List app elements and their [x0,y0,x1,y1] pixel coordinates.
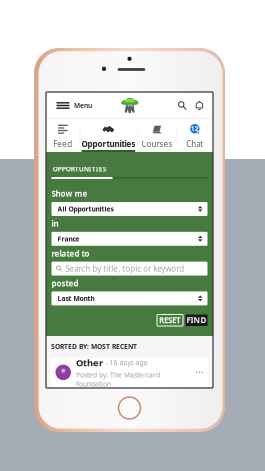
button[interactable]: Last Month [51,291,207,305]
button[interactable]: Opportunities [80,119,137,152]
staticText: in [51,218,58,229]
button[interactable]: Menu [46,93,92,118]
staticText: SORTED BY: MOST RECENT [51,342,137,351]
button[interactable]: 12 [177,119,213,152]
button[interactable]: All Opportunities [51,202,207,216]
button[interactable]: France [51,232,207,246]
staticText: OPPORTUNITIES [53,165,107,173]
staticText: related to [51,248,89,259]
staticText: RESET [159,315,181,325]
staticText: France [57,234,79,243]
staticText: Search by title, topic or keyword [65,263,184,274]
button[interactable]: Courses [137,119,177,152]
staticText: Other [76,356,103,369]
staticText: Menu [74,101,92,110]
staticText: Show me [51,188,87,199]
staticText: - 16 days ago [105,358,147,367]
button[interactable]: Search by title, topic or keyword [51,262,207,276]
button[interactable]: Notifications [192,95,213,115]
staticText: posted [51,278,78,289]
staticText: Opportunities [81,138,135,149]
button[interactable]: Search [173,96,192,115]
button[interactable]: Feed [46,119,80,152]
button[interactable]: RESET [157,314,183,326]
button[interactable]: Other [50,358,209,387]
staticText: Posted by: The Mastercard Foundation [76,371,160,388]
staticText: 12 [191,124,199,133]
button[interactable]: FIND [185,314,207,326]
staticText: All Opportunities [57,205,113,213]
staticText: Chat [186,138,203,149]
staticText: FIND [186,315,206,325]
staticText: Last Month [57,294,94,303]
staticText: Courses [141,138,172,149]
staticText: Feed [53,138,72,149]
